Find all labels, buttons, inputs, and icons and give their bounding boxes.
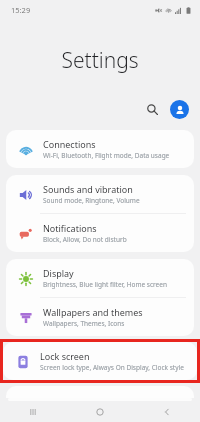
button[interactable]: Notifications (6, 214, 194, 252)
staticText: Wi-Fi, Bluetooth, Flight mode, Data usag… (43, 151, 170, 160)
staticText: Screen lock type, Always On Display, Clo… (40, 363, 184, 372)
button[interactable]: Connections (6, 130, 194, 168)
staticText: Sound mode, Ringtone, Volume (43, 196, 140, 205)
button[interactable]: Search (140, 97, 164, 121)
staticText: 15:29 (11, 5, 31, 15)
staticText: Wallpapers and themes (43, 306, 143, 318)
staticText: Notifications (43, 222, 97, 234)
button[interactable]: Wallpapers and themes (6, 298, 194, 336)
staticText: Sounds and vibration (43, 183, 133, 195)
button[interactable]: Home (66, 401, 133, 422)
staticText: Block, Allow, Do not disturb (43, 235, 127, 244)
staticText: Brightness, Blue light filter, Home scre… (43, 280, 167, 289)
staticText: Settings (0, 46, 200, 75)
button[interactable]: Sounds and vibration (6, 175, 194, 213)
button[interactable]: Lock screen (3, 342, 197, 380)
staticText: Wallpapers, Themes, Icons (43, 319, 125, 328)
button[interactable]: Account (170, 100, 189, 119)
button[interactable]: Back (133, 401, 200, 422)
staticText: Connections (43, 138, 96, 150)
button[interactable]: Display (6, 259, 194, 297)
staticText: Lock screen (40, 350, 90, 362)
staticText: Display (43, 267, 74, 279)
button[interactable]: Recents (0, 401, 66, 422)
